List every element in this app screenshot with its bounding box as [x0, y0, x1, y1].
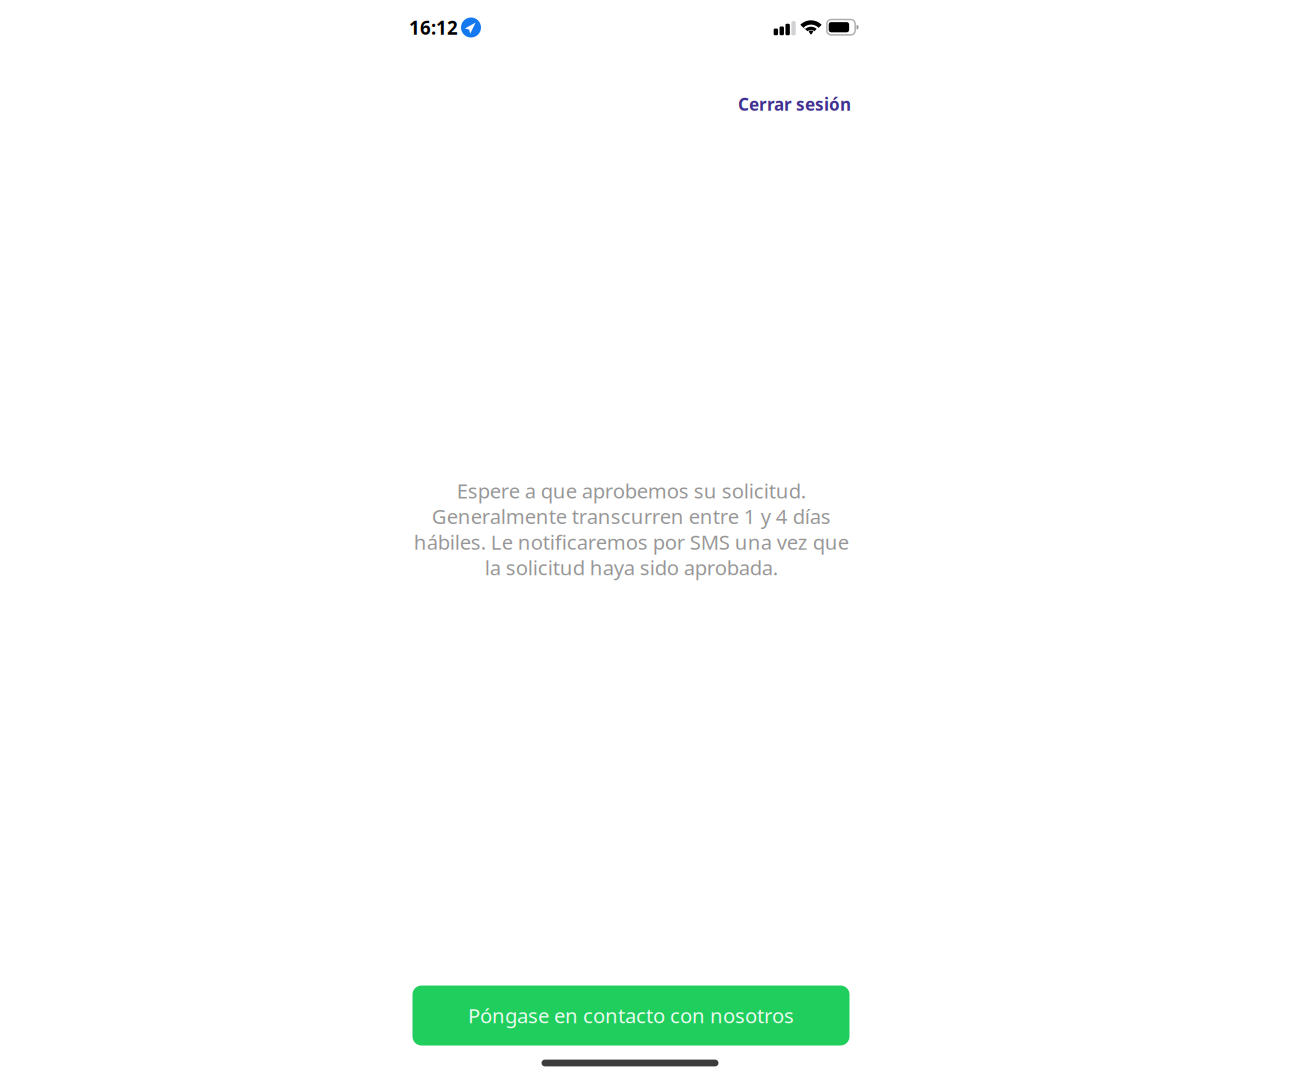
staticText: Cerrar sesión — [738, 93, 851, 116]
staticText: 16:12 — [409, 15, 458, 40]
staticText: Espere a que aprobemos su solicitud. Gen… — [413, 477, 848, 581]
staticText: Póngase en contacto con nosotros — [468, 1002, 794, 1029]
button[interactable]: Cerrar sesión — [691, 87, 851, 121]
button[interactable]: Póngase en contacto con nosotros — [412, 985, 849, 1045]
